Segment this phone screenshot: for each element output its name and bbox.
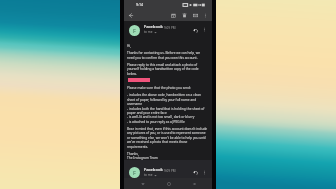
button[interactable]: More options bbox=[200, 168, 209, 177]
staticText: need you to confirm that you own this ac… bbox=[127, 56, 198, 60]
button[interactable]: Archive bbox=[169, 11, 178, 20]
staticText: or something else, we won't be able to h… bbox=[127, 136, 206, 140]
staticText: Please make sure that the photo you send… bbox=[127, 86, 191, 90]
staticText: F bbox=[133, 169, 136, 177]
staticText: paper and your entire face bbox=[127, 111, 167, 115]
staticText: Thanks, bbox=[127, 152, 139, 156]
staticText: - is attached to your reply as a JPEG fi… bbox=[127, 120, 185, 124]
staticText: - is well-lit and is not too small, dark… bbox=[127, 115, 195, 119]
button[interactable]: Mark as unread bbox=[191, 11, 200, 20]
staticText: requirements. bbox=[127, 145, 149, 149]
staticText: we've received a photo that meets those bbox=[127, 140, 188, 144]
staticText: to me bbox=[144, 173, 153, 177]
button[interactable]: Reply bbox=[190, 167, 200, 177]
staticText: below. bbox=[127, 72, 137, 76]
button[interactable]: Recent apps bbox=[187, 178, 200, 189]
staticText: The Instagram Team bbox=[127, 156, 158, 160]
staticText: - includes both the hand that is holding… bbox=[127, 107, 205, 111]
button[interactable]: More options bbox=[201, 11, 210, 20]
staticText: Please reply to this email and attach a … bbox=[127, 63, 198, 67]
staticText: - includes the above code, handwritten o… bbox=[127, 93, 202, 97]
button[interactable]: Navigate up bbox=[125, 10, 135, 20]
staticText: 9:09 PM bbox=[164, 169, 176, 173]
staticText: yourself holding a handwritten copy of t… bbox=[127, 67, 199, 71]
button[interactable]: More options bbox=[200, 25, 209, 34]
button[interactable]: Back bbox=[136, 178, 149, 189]
button[interactable]: Home bbox=[162, 178, 175, 189]
staticText: username bbox=[127, 102, 143, 106]
button[interactable]: F bbox=[124, 160, 212, 178]
staticText: Hi, bbox=[127, 44, 132, 48]
button[interactable]: Reply bbox=[190, 25, 200, 35]
staticText: Facebook bbox=[144, 167, 163, 173]
staticText: Bear in mind that, even if this account … bbox=[127, 127, 208, 131]
staticText: F bbox=[133, 27, 136, 35]
button[interactable]: Delete bbox=[180, 11, 189, 20]
staticText: 9:09 PM bbox=[164, 26, 176, 30]
staticText: sheet of paper, followed by your full na… bbox=[127, 98, 197, 102]
staticText: Facebook bbox=[144, 24, 163, 30]
staticText: any pictures of you, or is used to repre… bbox=[127, 131, 206, 135]
staticText: to me bbox=[144, 30, 153, 34]
staticText: 9:14 bbox=[136, 2, 144, 7]
staticText: Thanks for contacting us. Before we can … bbox=[127, 51, 201, 55]
